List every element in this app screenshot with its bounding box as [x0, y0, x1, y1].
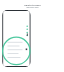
staticText: health tracker [24, 3, 41, 6]
staticText: wellness app [26, 6, 39, 9]
